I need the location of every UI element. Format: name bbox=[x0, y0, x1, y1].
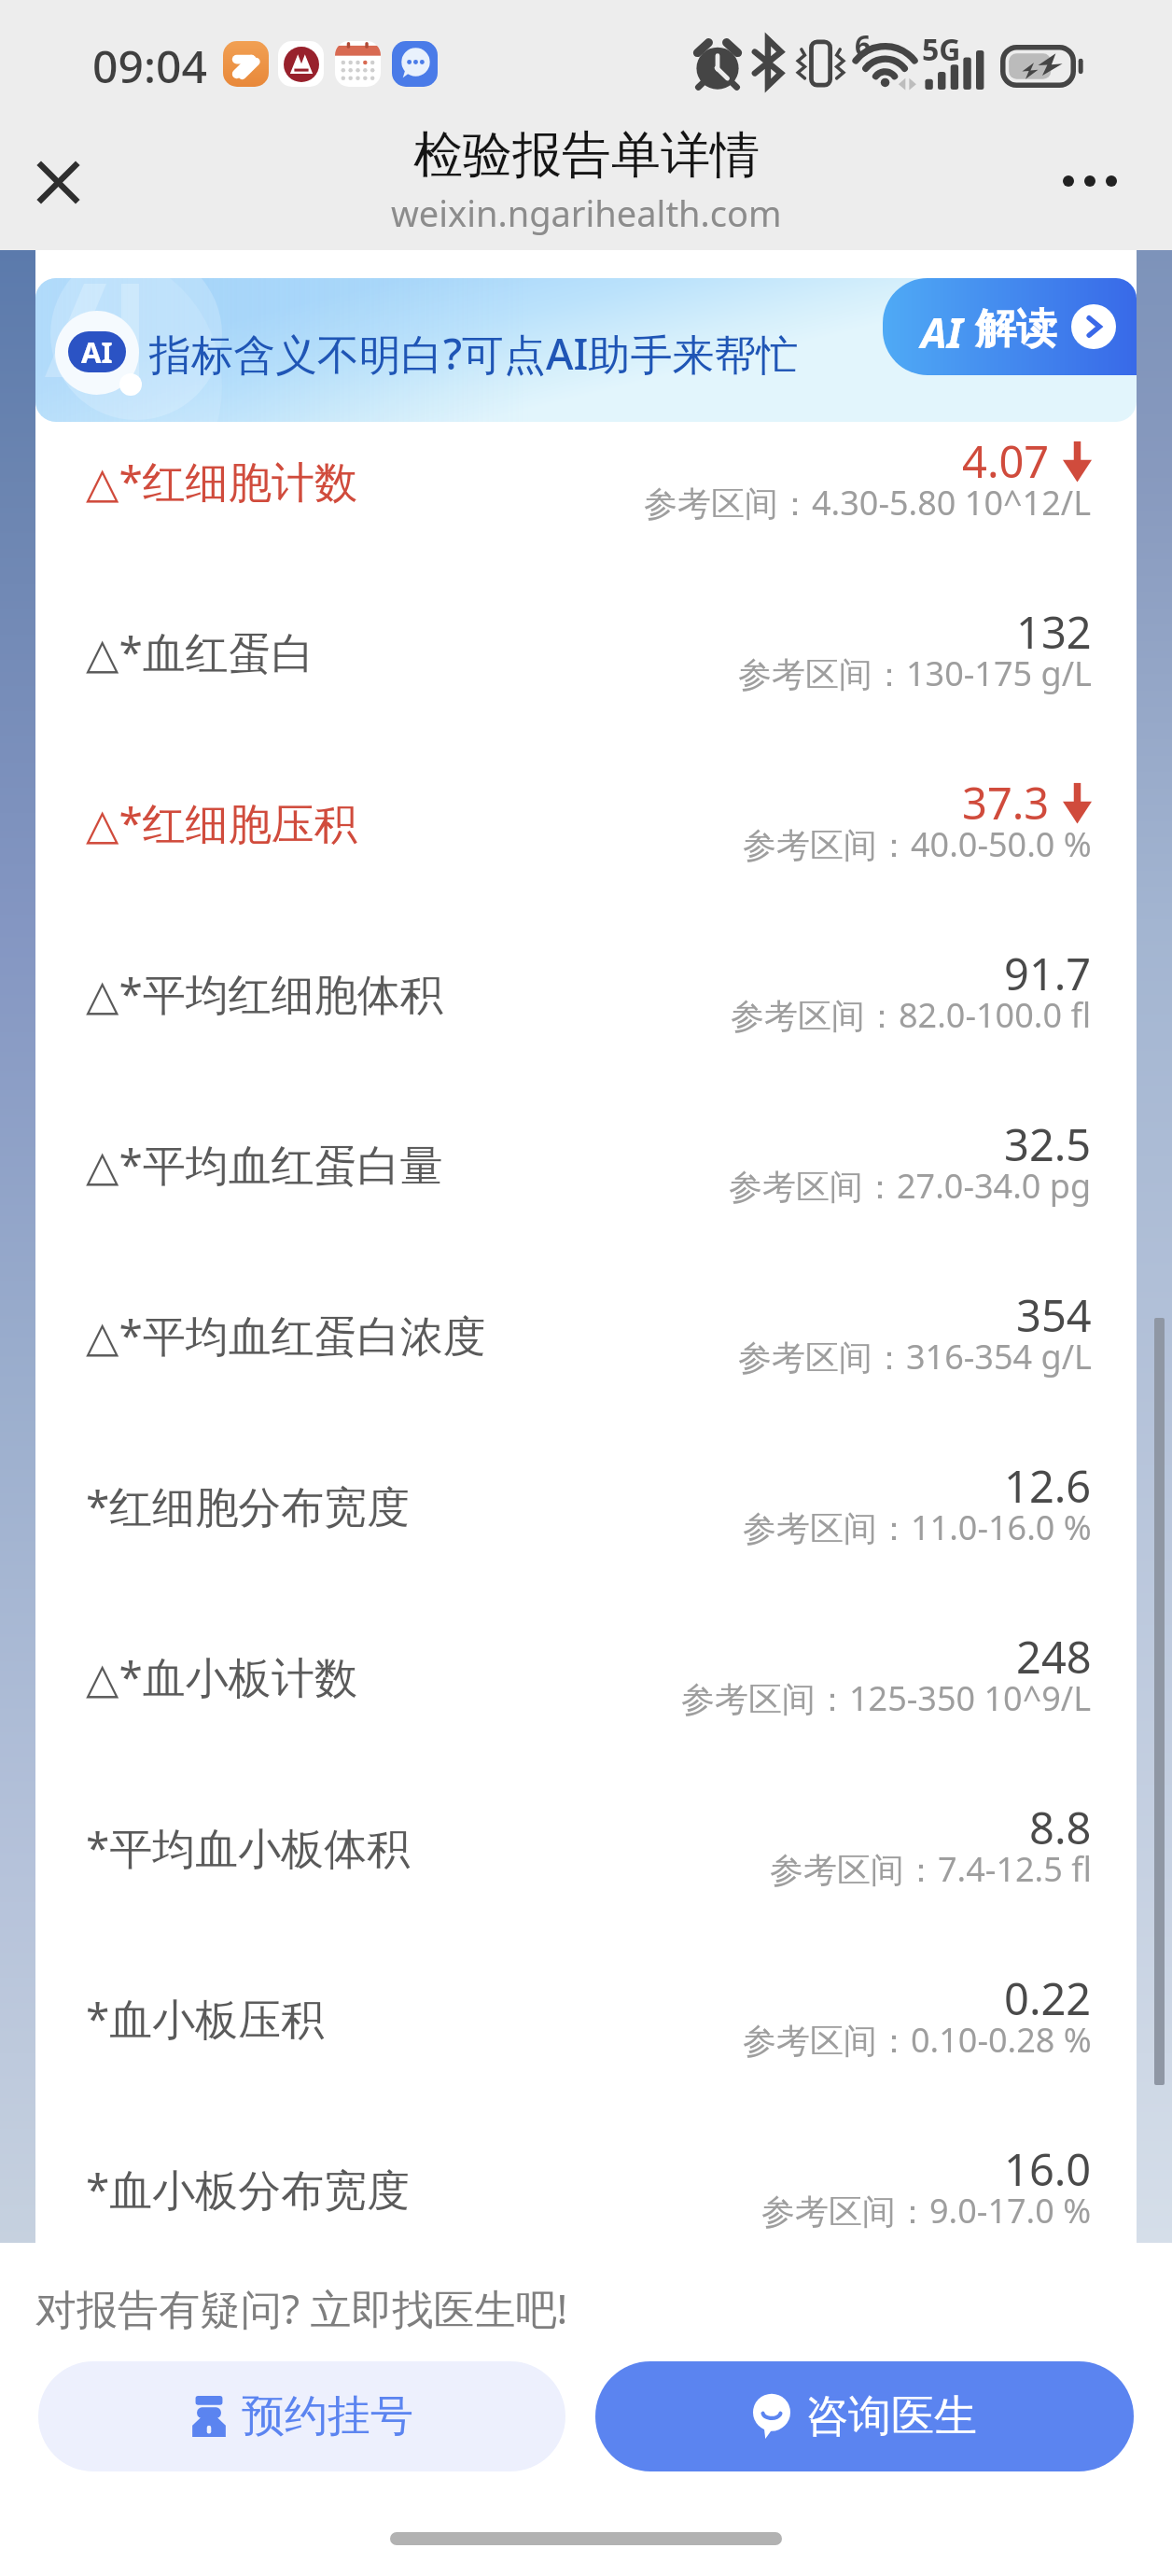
staticText: 5G bbox=[922, 29, 961, 70]
staticText: 132 bbox=[1016, 602, 1092, 662]
staticText: 参考区间：0.10-0.28 % bbox=[743, 2017, 1092, 2063]
button[interactable]: △*红细胞压积 bbox=[35, 763, 1137, 934]
staticText: 检验报告单详情 bbox=[413, 124, 760, 187]
staticText: 参考区间：11.0-16.0 % bbox=[743, 1505, 1092, 1550]
staticText: 参考区间：7.4-12.5 fl bbox=[770, 1846, 1092, 1892]
staticText: 参考区间：4.30-5.80 10^12/L bbox=[644, 480, 1092, 525]
button[interactable]: 预约挂号 bbox=[38, 2361, 565, 2471]
staticText: *红细胞分布宽度 bbox=[86, 1477, 411, 1535]
button[interactable]: AI bbox=[883, 278, 1137, 375]
staticText: *平均血小板体积 bbox=[86, 1818, 411, 1877]
staticText: △*平均红细胞体积 bbox=[86, 964, 443, 1023]
button[interactable]: △*红细胞计数 bbox=[35, 422, 1137, 593]
button[interactable]: AI bbox=[35, 278, 1137, 422]
staticText: 248 bbox=[1016, 1627, 1092, 1687]
staticText: 解读 bbox=[975, 303, 1057, 355]
button[interactable]: △*血小板计数 bbox=[35, 1617, 1137, 1788]
staticText: 354 bbox=[1016, 1285, 1092, 1345]
button[interactable]: △*平均血红蛋白量 bbox=[35, 1105, 1137, 1276]
staticText: 参考区间：82.0-100.0 fl bbox=[731, 992, 1092, 1038]
staticText: *血小板压积 bbox=[86, 1989, 325, 2048]
staticText: AI bbox=[921, 304, 963, 360]
staticText: 37.3 bbox=[962, 773, 1050, 833]
staticText: 参考区间：9.0-17.0 % bbox=[761, 2188, 1092, 2233]
button[interactable]: *红细胞分布宽度 bbox=[35, 1447, 1137, 1617]
staticText: weixin.ngarihealth.com bbox=[391, 189, 782, 237]
staticText: 12.6 bbox=[1004, 1456, 1092, 1516]
staticText: △*平均血红蛋白浓度 bbox=[86, 1306, 486, 1365]
staticText: 09:04 bbox=[92, 35, 207, 96]
staticText: 91.7 bbox=[1004, 944, 1092, 1003]
staticText: 参考区间：40.0-50.0 % bbox=[743, 821, 1092, 867]
button[interactable]: *血小板分布宽度 bbox=[35, 2130, 1137, 2301]
staticText: 参考区间：27.0-34.0 pg bbox=[729, 1163, 1092, 1209]
button[interactable]: *平均血小板体积 bbox=[35, 1788, 1137, 1959]
button[interactable]: △*平均血红蛋白浓度 bbox=[35, 1276, 1137, 1447]
staticText: 对报告有疑问? 立即找医生吧! bbox=[35, 2280, 568, 2336]
staticText: *血小板分布宽度 bbox=[86, 2160, 411, 2219]
staticText: 8.8 bbox=[1029, 1798, 1092, 1857]
staticText: 参考区间：316-354 g/L bbox=[738, 1334, 1092, 1379]
staticText: 参考区间：130-175 g/L bbox=[738, 651, 1092, 696]
staticText: △*血红蛋白 bbox=[86, 623, 314, 681]
button[interactable]: △*平均红细胞体积 bbox=[35, 934, 1137, 1105]
staticText: 咨询医生 bbox=[805, 2389, 977, 2443]
staticText: △*红细胞压积 bbox=[86, 793, 357, 852]
staticText: △*血小板计数 bbox=[86, 1647, 357, 1706]
staticText: △*红细胞计数 bbox=[86, 452, 357, 511]
button[interactable]: *血小板压积 bbox=[35, 1959, 1137, 2130]
button[interactable]: △*血红蛋白 bbox=[35, 593, 1137, 763]
button[interactable]: More options bbox=[1054, 146, 1125, 217]
staticText: 16.0 bbox=[1004, 2139, 1092, 2199]
staticText: △*平均血红蛋白量 bbox=[86, 1135, 443, 1194]
staticText: 指标含义不明白?可点AI助手来帮忙 bbox=[149, 325, 799, 382]
staticText: 6 bbox=[855, 26, 872, 64]
staticText: 4.07 bbox=[962, 431, 1050, 491]
staticText: 参考区间：125-350 10^9/L bbox=[681, 1675, 1092, 1721]
staticText: 预约挂号 bbox=[242, 2389, 413, 2443]
button[interactable]: Close bbox=[22, 147, 93, 217]
staticText: AI bbox=[81, 332, 113, 371]
button[interactable]: 咨询医生 bbox=[595, 2361, 1134, 2471]
staticText: 32.5 bbox=[1004, 1114, 1092, 1174]
staticText: 0.22 bbox=[1004, 1968, 1092, 2028]
